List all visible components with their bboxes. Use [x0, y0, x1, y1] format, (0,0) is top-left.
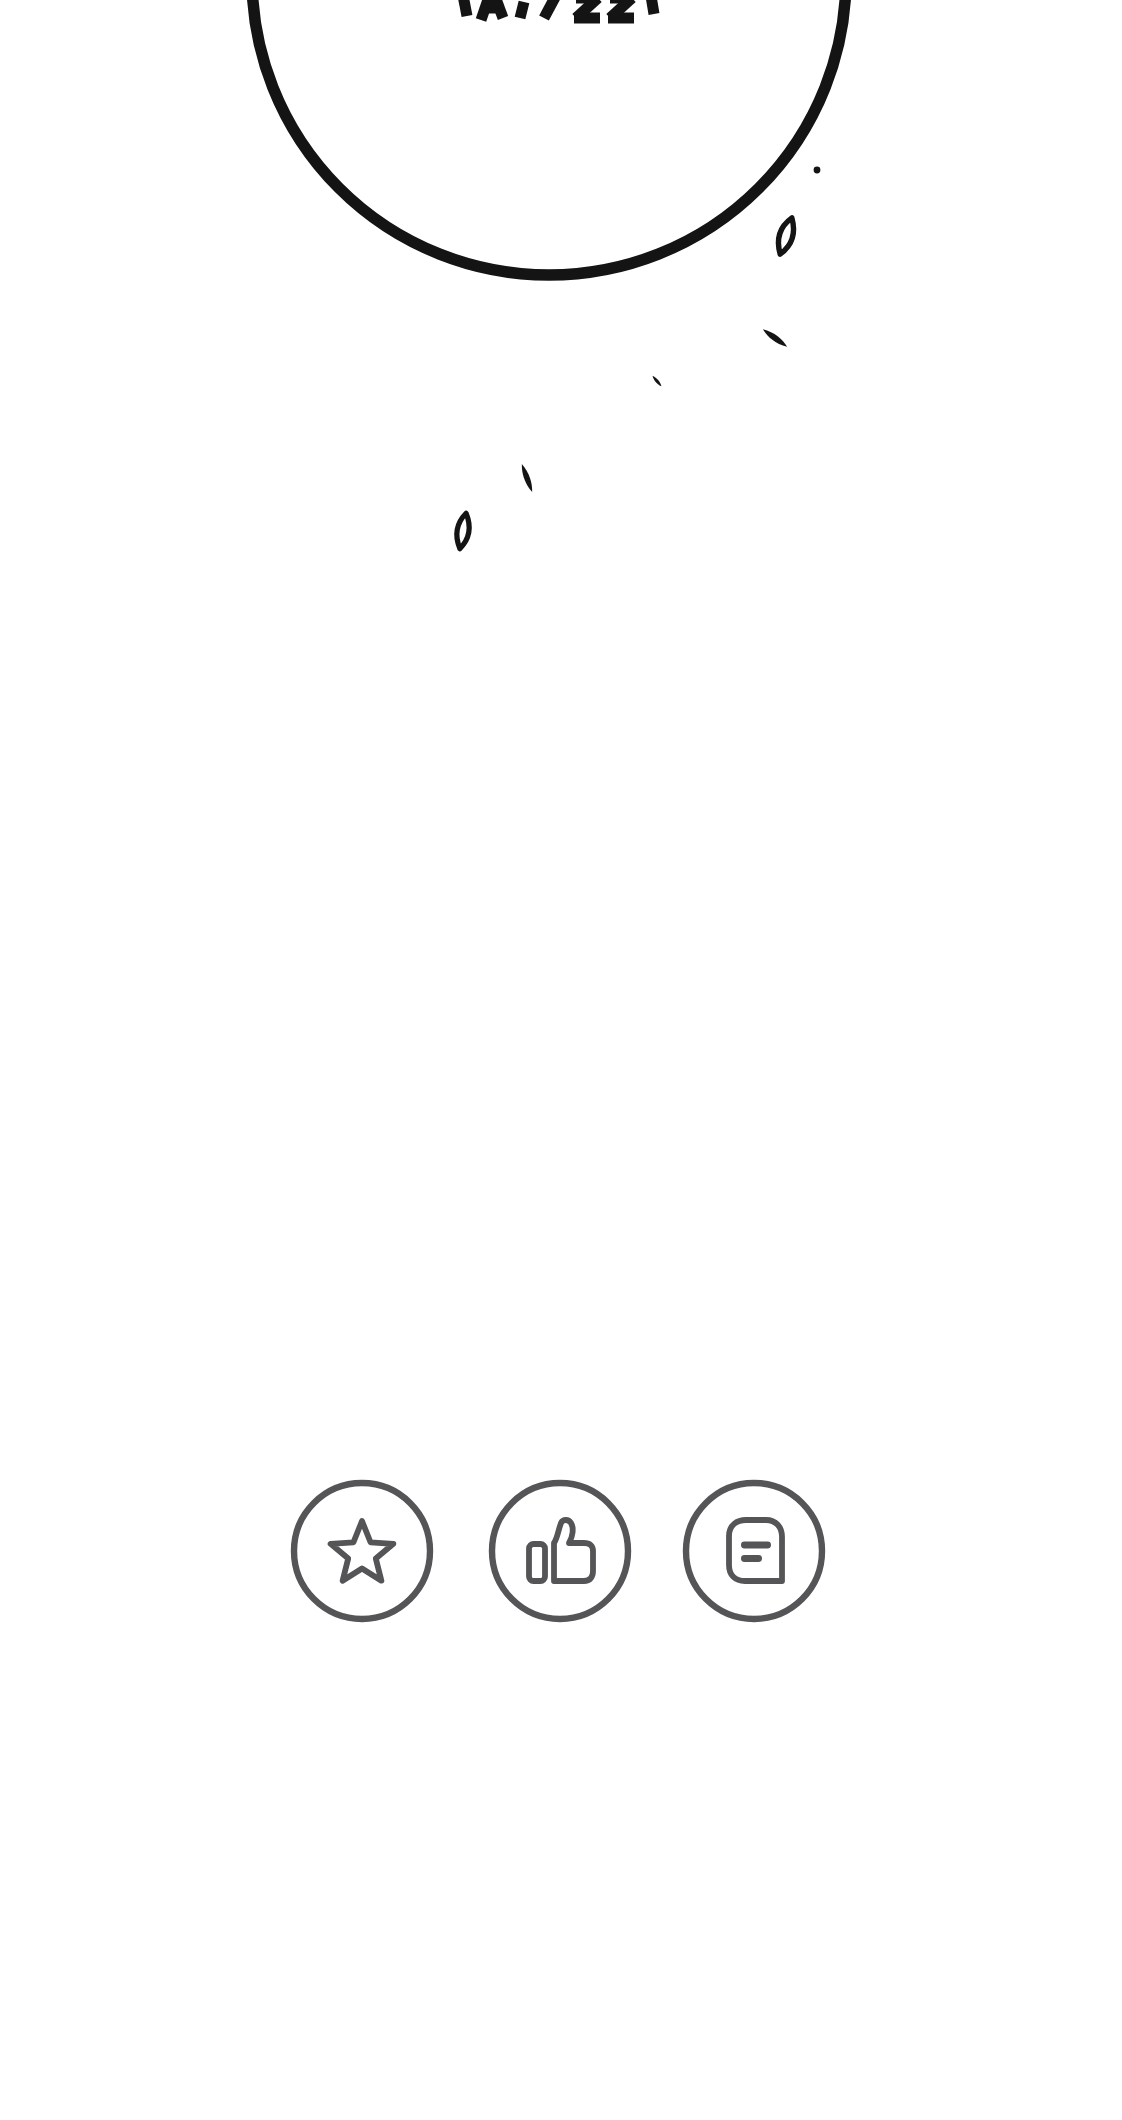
button[interactable]: Like — [490, 1481, 630, 1621]
button[interactable]: Comment — [684, 1481, 824, 1621]
button[interactable]: Favorite — [292, 1481, 432, 1621]
